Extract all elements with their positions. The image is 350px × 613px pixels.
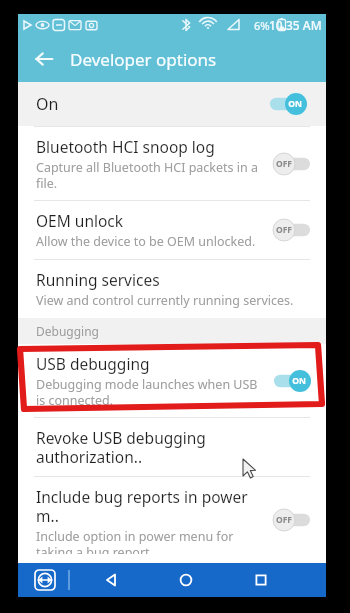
button[interactable]: Recents <box>246 565 276 595</box>
staticText: On <box>36 93 59 115</box>
staticText: OFF <box>273 514 295 526</box>
button[interactable]: Switch off <box>272 218 312 242</box>
staticText: OFF <box>273 224 295 236</box>
staticText: ON <box>284 98 306 110</box>
staticText: OEM unlock <box>36 210 124 231</box>
staticText: Revoke USB debugging authorization.. <box>36 427 312 467</box>
staticText: Running services <box>36 269 160 290</box>
button[interactable]: Revoke USB debugging authorization.. <box>18 418 326 476</box>
button[interactable]: Switch off <box>272 508 312 532</box>
button[interactable]: Include bug reports in power m.. <box>18 477 326 563</box>
staticText: 6% <box>254 18 270 33</box>
button[interactable]: Switch on <box>272 369 312 393</box>
button[interactable]: Switch on <box>268 92 308 116</box>
button[interactable]: USB debugging <box>18 344 326 417</box>
button[interactable]: Home <box>171 565 201 595</box>
staticText: OFF <box>273 158 295 170</box>
staticText: Debugging mode launches when USB is conn… <box>36 376 266 408</box>
staticText: Capture all Bluetooth HCI packets in a f… <box>36 159 266 191</box>
staticText: Developer options <box>70 48 217 71</box>
button[interactable]: Back <box>26 41 62 77</box>
staticText: USB debugging <box>36 353 150 374</box>
staticText: 10.35 AM <box>269 17 322 33</box>
staticText: Bluetooth HCI snoop log <box>36 136 215 157</box>
staticText: Include bug reports in power m.. <box>36 486 266 526</box>
button[interactable]: TeamViewer <box>32 567 58 593</box>
button[interactable]: On <box>18 82 326 126</box>
staticText: ON <box>288 375 310 387</box>
button[interactable]: Bluetooth HCI snoop log <box>18 127 326 200</box>
staticText: Allow the device to be OEM unlocked. <box>36 233 256 250</box>
button[interactable]: Running services <box>18 260 326 318</box>
staticText: View and control currently running servi… <box>36 292 294 309</box>
button[interactable]: Back <box>96 565 126 595</box>
button[interactable]: OEM unlock <box>18 201 326 259</box>
staticText: Include option in power menu for taking … <box>36 528 266 554</box>
staticText: Debugging <box>36 323 99 339</box>
button[interactable]: Switch off <box>272 152 312 176</box>
